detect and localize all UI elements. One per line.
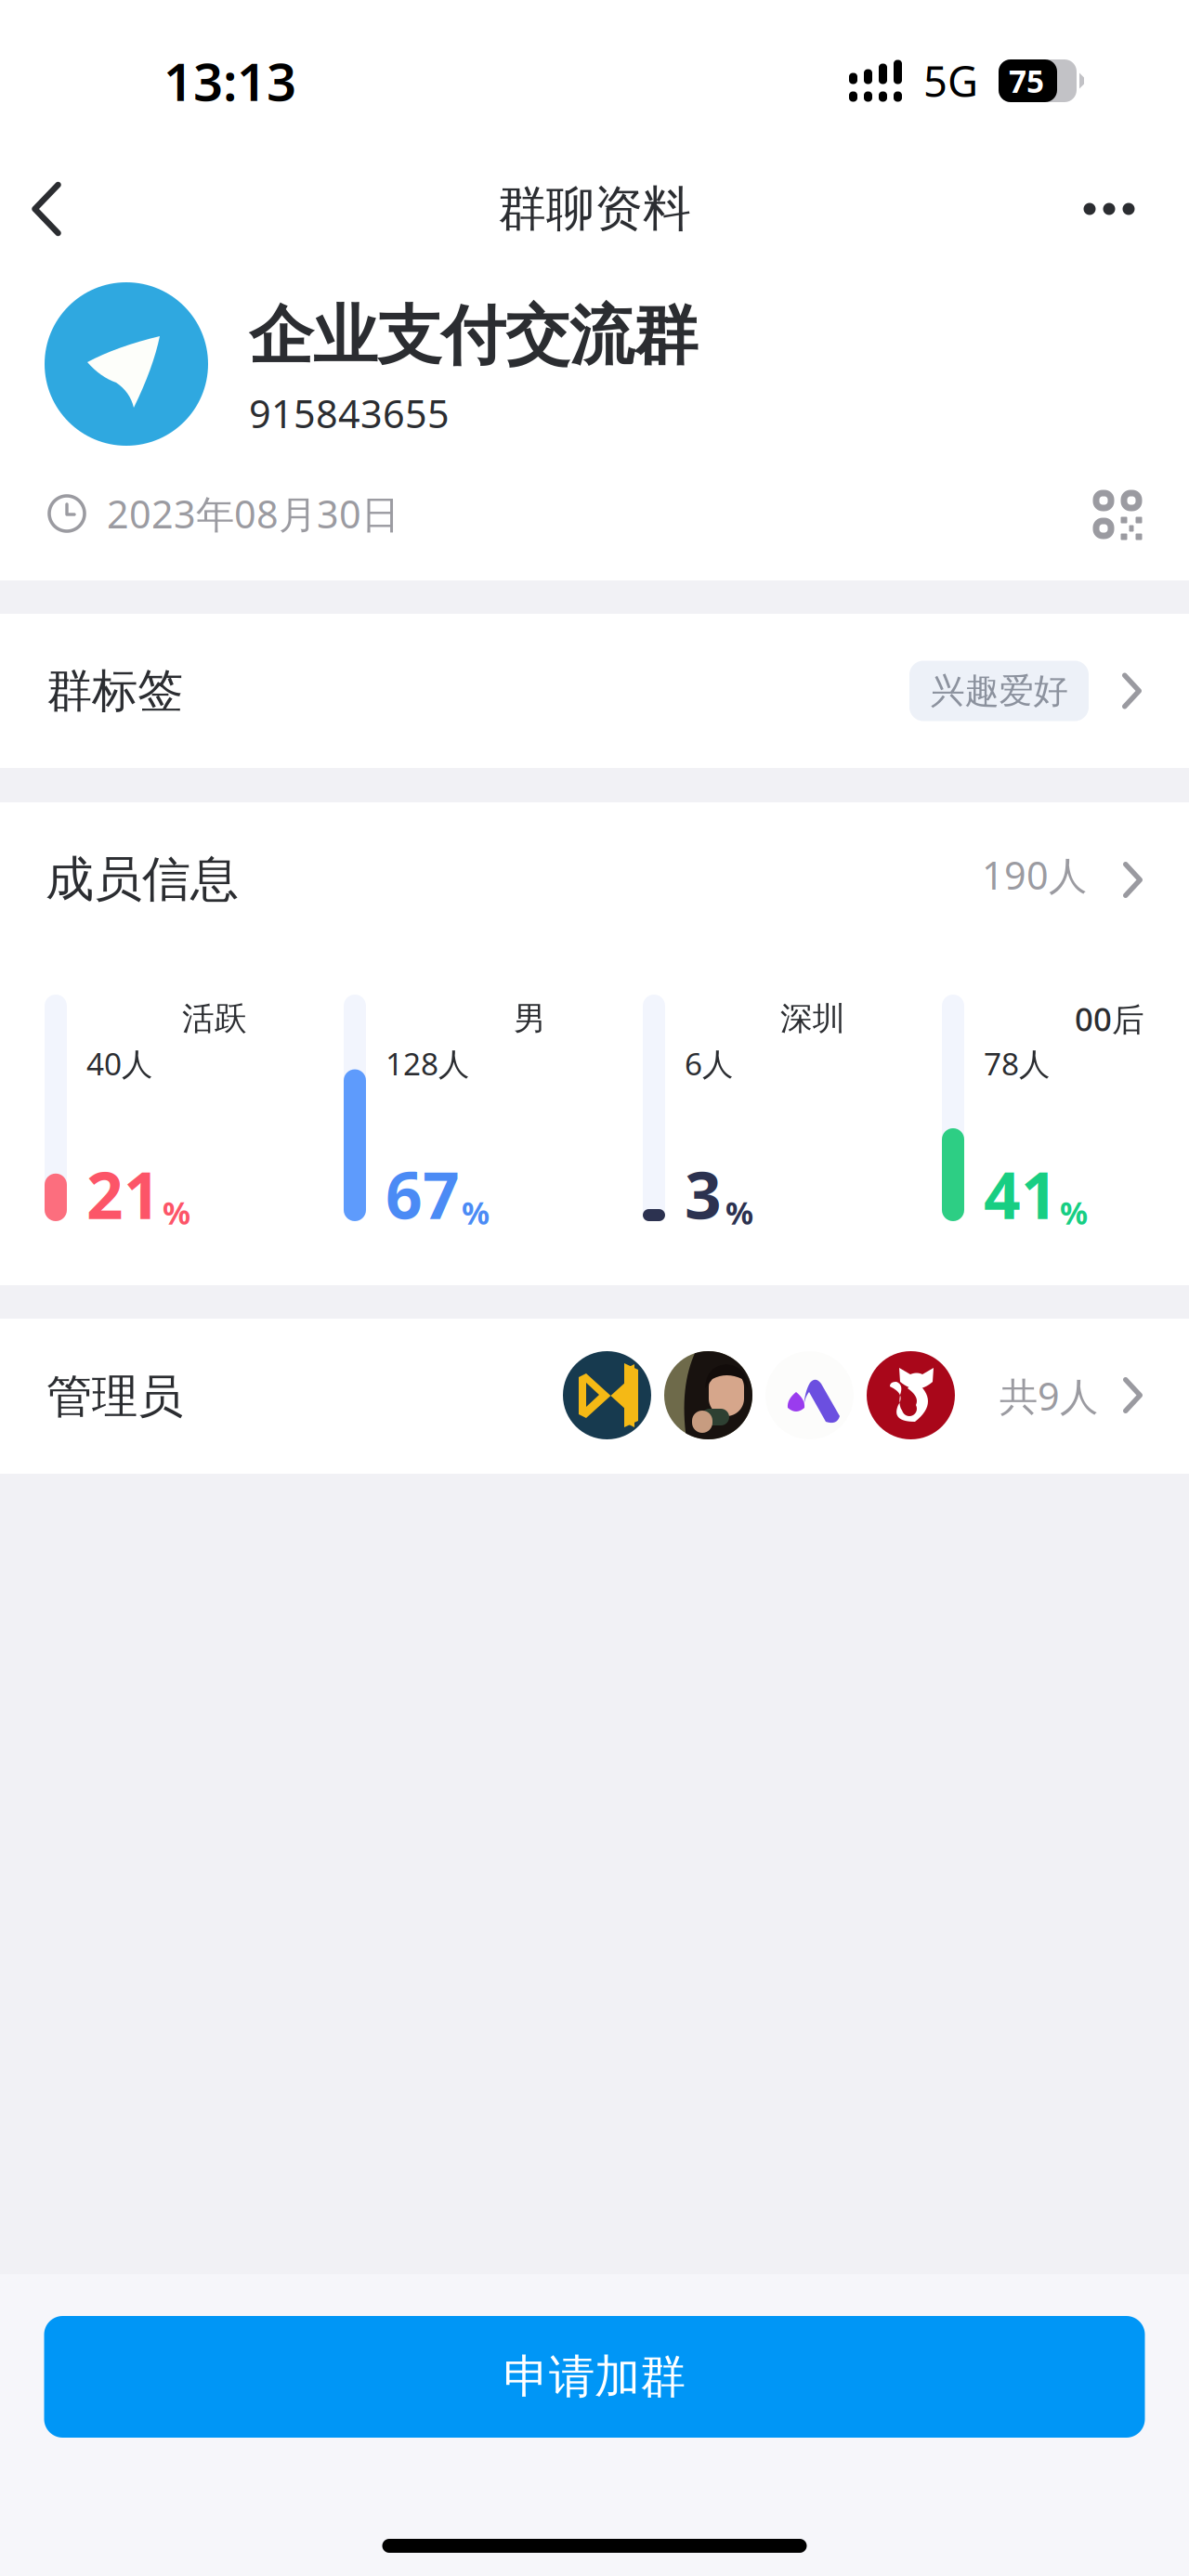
staticText: 5G xyxy=(923,53,978,109)
staticText: % xyxy=(462,1192,490,1233)
staticText: 群标签 xyxy=(46,663,183,719)
staticText: 75 xyxy=(1009,60,1044,101)
staticText: 67 xyxy=(385,1151,460,1237)
staticText: % xyxy=(163,1192,190,1233)
button[interactable]: 群标签 xyxy=(0,614,1189,768)
staticText: 13:13 xyxy=(163,46,296,115)
staticText: 21 xyxy=(86,1151,161,1237)
staticText: 3 xyxy=(685,1151,722,1237)
staticText: 共9人 xyxy=(1000,1370,1098,1421)
staticText: 2023年08月30日 xyxy=(107,488,399,539)
button[interactable]: Back xyxy=(1,162,92,256)
staticText: 群聊资料 xyxy=(498,179,691,239)
staticText: 915843655 xyxy=(249,388,450,439)
staticText: 深圳 xyxy=(780,999,845,1038)
staticText: 6人 xyxy=(685,1043,733,1084)
button[interactable]: QR code xyxy=(1080,477,1155,552)
staticText: 男 xyxy=(514,999,546,1038)
staticText: 128人 xyxy=(385,1043,469,1084)
staticText: 企业支付交流群 xyxy=(249,297,698,376)
staticText: 管理员 xyxy=(46,1369,183,1425)
staticText: % xyxy=(1060,1192,1088,1233)
staticText: 78人 xyxy=(984,1043,1050,1084)
staticText: 00后 xyxy=(1075,997,1144,1040)
staticText: % xyxy=(725,1192,753,1233)
staticText: 40人 xyxy=(86,1043,152,1084)
button[interactable]: More xyxy=(1058,162,1160,256)
button[interactable]: 管理员 xyxy=(0,1319,1189,1474)
staticText: 190人 xyxy=(982,849,1087,900)
staticText: 申请加群 xyxy=(503,2349,686,2405)
staticText: 兴趣爱好 xyxy=(930,670,1068,712)
button[interactable]: 成员信息 xyxy=(0,802,1189,943)
button[interactable]: 申请加群 xyxy=(44,2316,1145,2438)
staticText: 41 xyxy=(984,1151,1058,1237)
staticText: 活跃 xyxy=(182,999,247,1038)
staticText: 成员信息 xyxy=(46,850,239,909)
